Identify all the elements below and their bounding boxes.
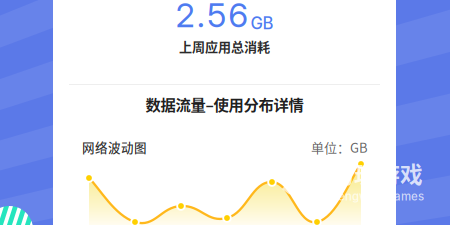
- staticText: GB: [250, 13, 273, 33]
- staticText: 2: [176, 0, 195, 35]
- staticText: 6: [228, 0, 248, 35]
- staticText: .: [197, 0, 205, 35]
- staticText: 5: [207, 0, 226, 35]
- staticText: Rengwan Games: [331, 189, 424, 203]
- staticText: 单位：GB: [311, 137, 368, 156]
- staticText: 上周应用总消耗: [179, 36, 270, 55]
- staticText: 网络波动图: [82, 138, 147, 156]
- staticText: 数据流量–使用分布详情: [145, 93, 303, 115]
- staticText: 仍玩游戏: [331, 157, 423, 189]
